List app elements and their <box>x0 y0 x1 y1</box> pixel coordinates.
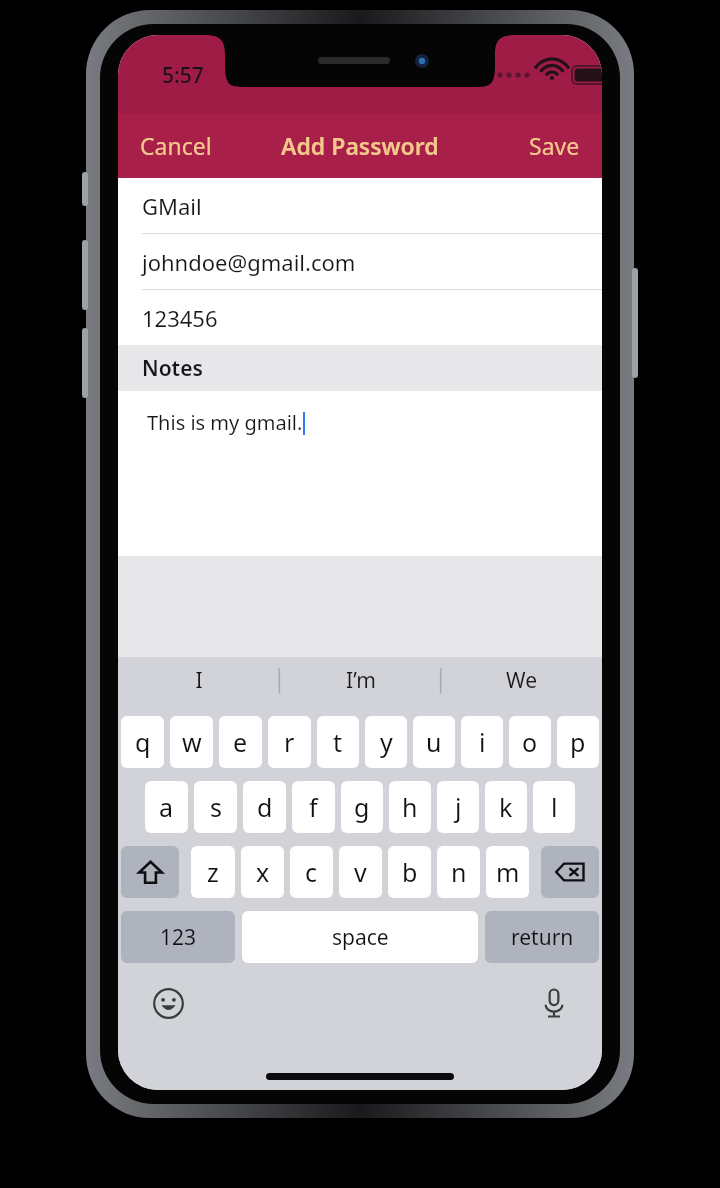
staticText: w <box>182 725 202 759</box>
staticText: a <box>159 790 174 824</box>
staticText: c <box>305 855 318 889</box>
button[interactable]: w <box>170 716 213 768</box>
staticText: o <box>522 725 538 759</box>
button[interactable]: j <box>437 781 479 833</box>
button[interactable]: m <box>486 846 529 898</box>
staticText: u <box>426 725 442 759</box>
button[interactable]: p <box>557 716 599 768</box>
staticText: p <box>570 725 586 759</box>
staticText: I <box>195 666 203 695</box>
staticText: Add Password <box>281 130 439 161</box>
button[interactable]: y <box>365 716 407 768</box>
button[interactable]: Save <box>507 113 602 178</box>
button[interactable]: This is my gmail. <box>118 391 602 556</box>
button[interactable]: o <box>509 716 551 768</box>
staticText: v <box>354 855 367 889</box>
staticText: johndoe@gmail.com <box>142 247 356 277</box>
staticText: Save <box>529 130 580 161</box>
staticText: y <box>380 725 393 759</box>
staticText: s <box>210 790 222 824</box>
button[interactable]: space <box>242 911 478 963</box>
button[interactable]: Backspace <box>541 846 599 898</box>
staticText: Notes <box>142 354 203 383</box>
button[interactable]: r <box>268 716 311 768</box>
button[interactable]: d <box>243 781 286 833</box>
staticText: This is my gmail. <box>147 409 303 436</box>
button[interactable]: Emoji keyboard <box>146 981 190 1025</box>
button[interactable]: c <box>290 846 333 898</box>
staticText: return <box>511 923 574 952</box>
staticText: x <box>256 855 270 889</box>
staticText: t <box>333 725 343 759</box>
button[interactable]: f <box>292 781 335 833</box>
button[interactable]: v <box>339 846 382 898</box>
button[interactable]: return <box>485 911 599 963</box>
staticText: 123 <box>160 923 197 952</box>
button[interactable]: a <box>145 781 188 833</box>
staticText: I’m <box>346 666 376 695</box>
staticText: GMail <box>142 191 202 221</box>
button[interactable]: q <box>121 716 164 768</box>
button[interactable]: n <box>437 846 480 898</box>
button[interactable]: s <box>194 781 237 833</box>
button[interactable]: g <box>341 781 383 833</box>
staticText: r <box>284 725 295 759</box>
staticText: d <box>257 790 273 824</box>
button[interactable]: johndoe@gmail.com <box>118 234 602 289</box>
button[interactable]: I <box>118 657 280 704</box>
staticText: Cancel <box>140 130 212 161</box>
staticText: q <box>135 725 151 759</box>
staticText: We <box>506 666 537 695</box>
button[interactable]: GMail <box>118 178 602 233</box>
staticText: l <box>551 790 558 824</box>
staticText: k <box>499 790 513 824</box>
button[interactable]: Cancel <box>118 113 234 178</box>
button[interactable]: t <box>317 716 359 768</box>
button[interactable]: We <box>441 657 602 704</box>
button[interactable]: z <box>191 846 235 898</box>
staticText: b <box>402 855 418 889</box>
staticText: m <box>496 855 520 889</box>
button[interactable]: e <box>219 716 262 768</box>
button[interactable]: i <box>461 716 503 768</box>
button[interactable]: h <box>389 781 431 833</box>
button[interactable]: x <box>241 846 284 898</box>
button[interactable]: k <box>485 781 527 833</box>
staticText: space <box>332 923 389 952</box>
button[interactable]: Dictation <box>532 981 576 1025</box>
button[interactable]: b <box>388 846 431 898</box>
staticText: n <box>451 855 467 889</box>
staticText: z <box>207 855 219 889</box>
staticText: g <box>354 790 370 824</box>
button[interactable]: I’m <box>280 657 441 704</box>
button[interactable]: u <box>413 716 455 768</box>
staticText: h <box>402 790 418 824</box>
staticText: 123456 <box>142 303 218 333</box>
staticText: f <box>309 790 318 824</box>
staticText: e <box>233 725 248 759</box>
staticText: i <box>479 725 486 759</box>
staticText: j <box>455 790 462 824</box>
staticText: 5:57 <box>162 61 204 90</box>
button[interactable]: l <box>533 781 575 833</box>
button[interactable]: 123456 <box>118 290 602 345</box>
button[interactable]: Shift <box>121 846 179 898</box>
button[interactable]: 123 <box>121 911 235 963</box>
